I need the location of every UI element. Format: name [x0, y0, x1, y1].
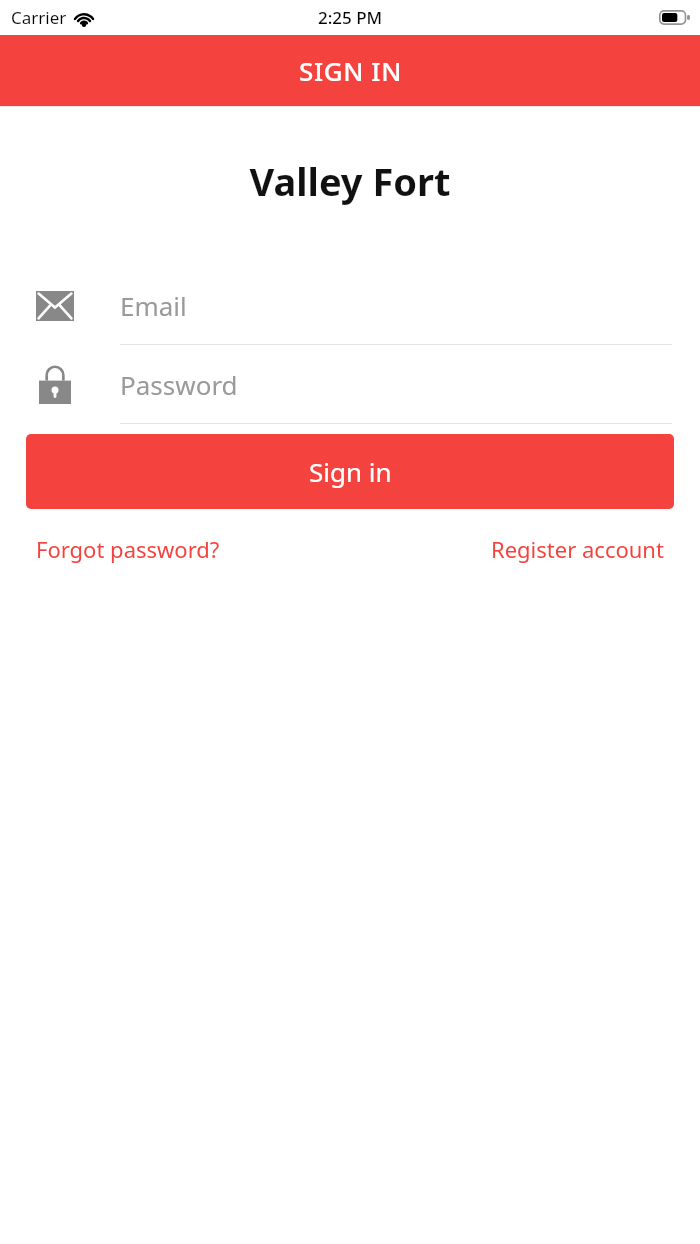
- button[interactable]: Forgot password?: [26, 530, 230, 568]
- button[interactable]: Email: [120, 266, 672, 345]
- button[interactable]: Sign in: [26, 434, 674, 509]
- button[interactable]: Register account: [481, 530, 674, 568]
- staticText: Valley Fort: [0, 155, 700, 207]
- staticText: Sign in: [309, 454, 392, 489]
- staticText: 2:25 PM: [318, 6, 383, 29]
- staticText: Forgot password?: [36, 534, 220, 564]
- staticText: Password: [120, 367, 238, 402]
- other: Email: [0, 266, 120, 345]
- staticText: Register account: [491, 534, 664, 564]
- staticText: SIGN IN: [299, 53, 402, 88]
- staticText: Carrier: [11, 6, 67, 29]
- button[interactable]: Password: [120, 345, 672, 424]
- other: Password: [0, 345, 120, 424]
- staticText: Email: [120, 288, 187, 323]
